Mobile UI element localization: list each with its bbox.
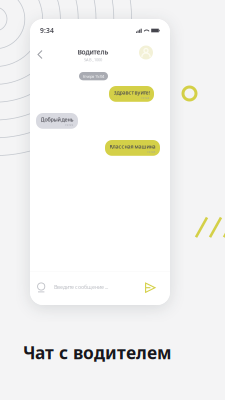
staticText: 15:08 (146, 150, 155, 154)
staticText: Классная машина (109, 143, 155, 150)
staticText: Водитель (77, 47, 108, 56)
staticText: 15:04 (140, 96, 149, 100)
button[interactable]: Профиль (139, 45, 153, 59)
staticText: 15:05 (64, 123, 73, 127)
staticText: Здравствуйте! (113, 89, 149, 96)
staticText: 9:34 (40, 26, 54, 35)
staticText: Введите сообщение ... (54, 283, 108, 291)
button[interactable]: Вложение (35, 280, 48, 294)
staticText: Вчера 15:04 (83, 73, 104, 79)
staticText: SAB_1000 (84, 57, 102, 62)
staticText: Добрый день (40, 116, 73, 123)
button[interactable]: Назад (35, 47, 50, 66)
button[interactable]: Отправить (143, 280, 158, 295)
staticText: Чат с водителем (23, 341, 172, 364)
